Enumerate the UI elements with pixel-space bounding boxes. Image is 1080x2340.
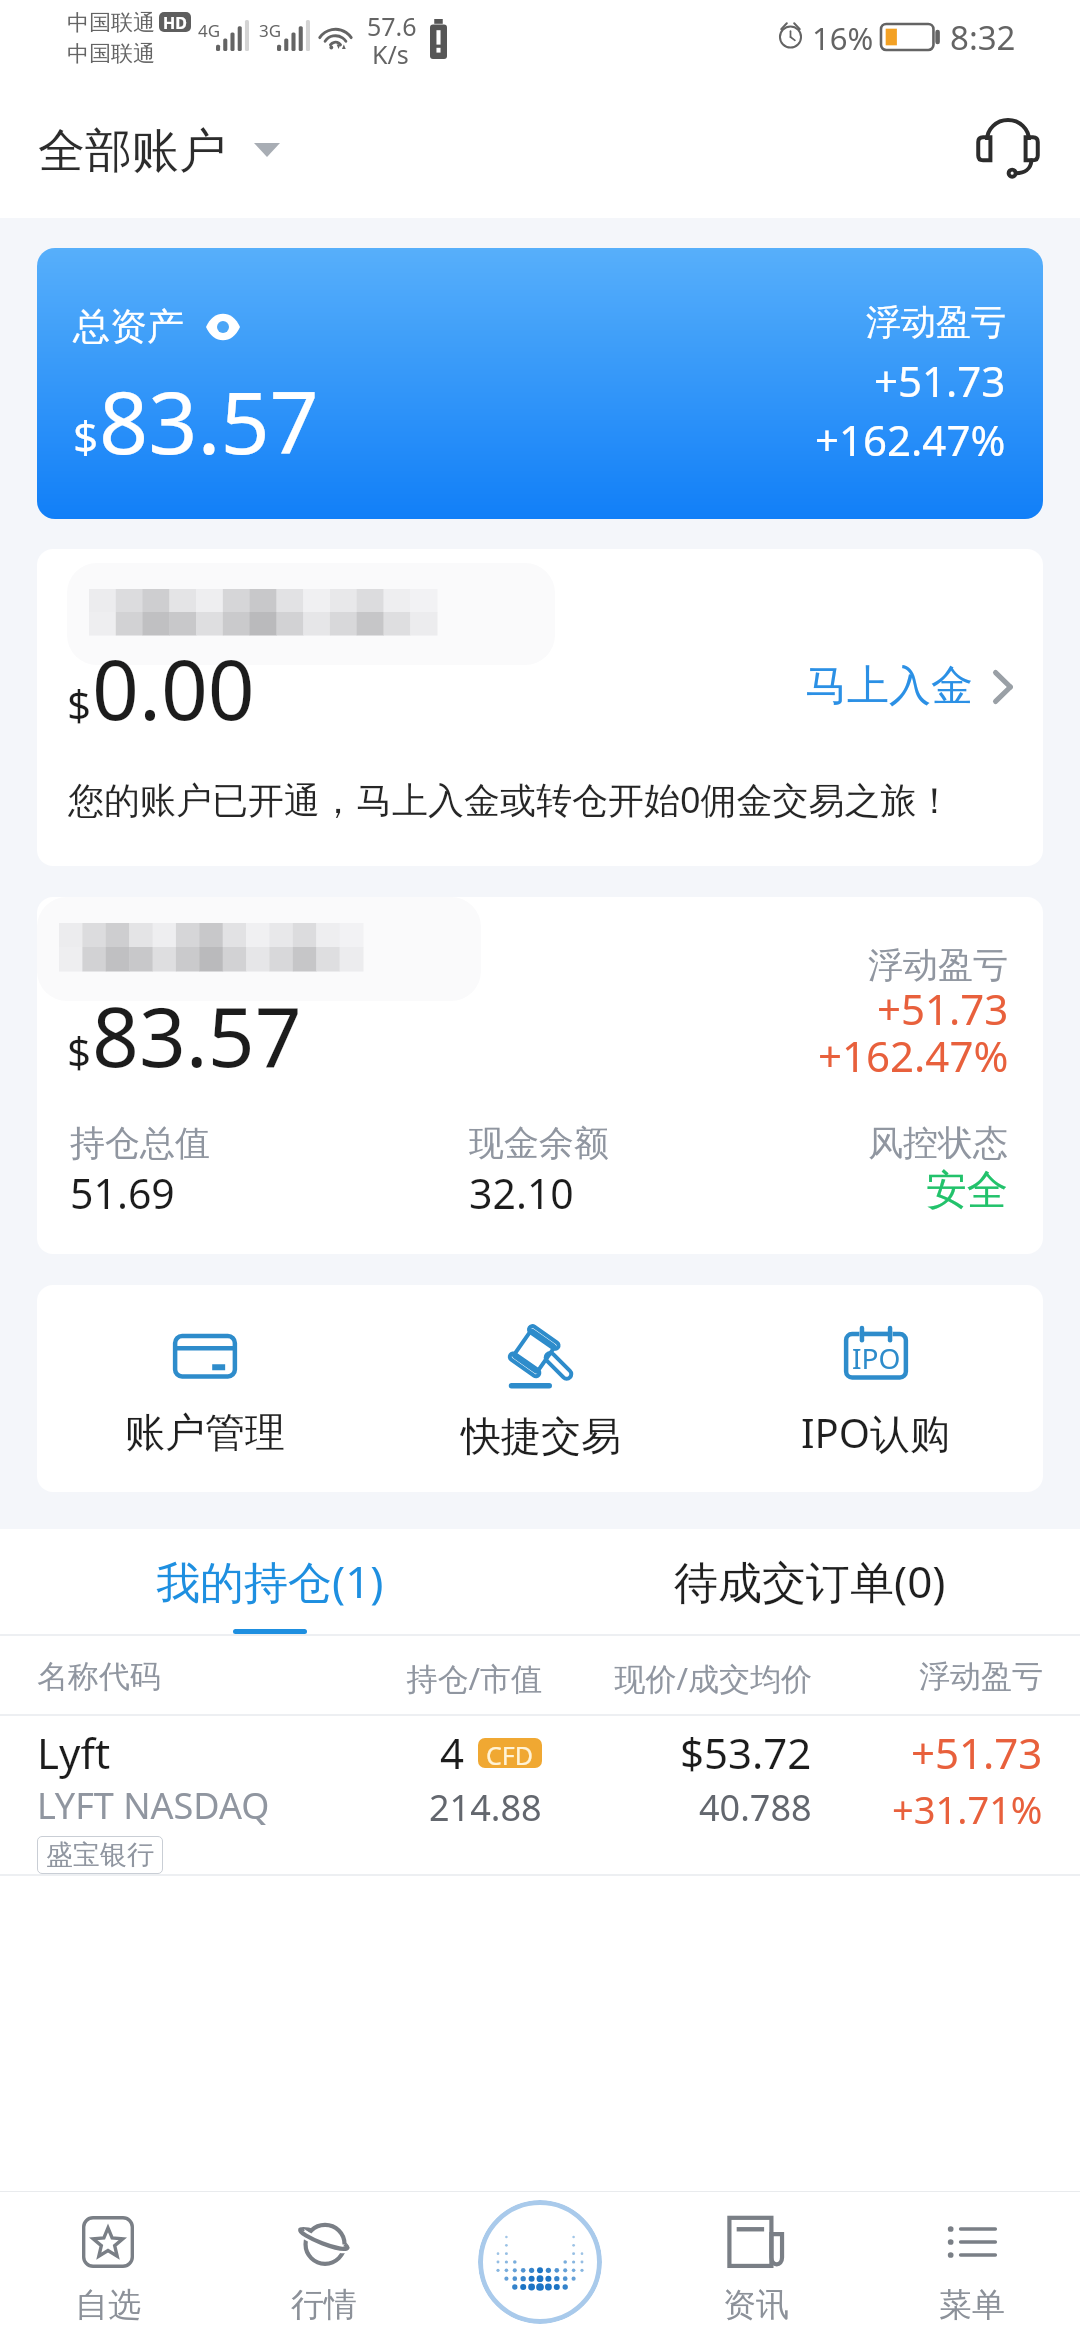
staticText: 总资产 [73, 303, 184, 350]
staticText: 账户 (••••8876) [69, 928, 309, 977]
staticText: LYFT NASDAQ [37, 1781, 270, 1830]
button[interactable]: 马上入金 [805, 660, 1013, 713]
staticText: 中国联通 [67, 40, 155, 68]
button[interactable]: 账户 (••••8876) [37, 897, 1043, 1254]
staticText: 现价/成交均价 [542, 1657, 812, 1699]
staticText: 3G [259, 19, 282, 42]
staticText: 全部账户 [38, 122, 226, 181]
staticText: 账户 (••••7715) [69, 598, 309, 647]
staticText: 马上入金 [805, 660, 973, 713]
button[interactable]: IPO [708, 1285, 1043, 1492]
staticText: 57.6 [367, 9, 417, 43]
staticText: 资讯 [723, 2284, 789, 2326]
staticText: 浮动盈亏 [868, 943, 1008, 987]
button[interactable]: 账户 (••••7715) [37, 549, 1043, 866]
button[interactable]: 资讯 [648, 2216, 864, 2340]
button[interactable]: 待成交订单(0) [540, 1529, 1080, 1634]
button[interactable]: 菜单 [864, 2216, 1080, 2340]
staticText: 4 [440, 1724, 465, 1781]
staticText: K/s [372, 37, 409, 71]
staticText: 8:32 [950, 15, 1016, 60]
staticText: 我的持仓(1) [156, 1551, 384, 1611]
staticText: 51.69 [70, 1165, 175, 1221]
staticText: IPO [852, 1339, 901, 1377]
staticText: 0.00 [92, 632, 255, 744]
staticText: 快捷交易 [461, 1411, 621, 1461]
staticText: 风控状态 [868, 1121, 1008, 1165]
staticText: +51.73 [874, 352, 1006, 409]
staticText: 83.57 [99, 362, 319, 479]
staticText: $ [73, 406, 99, 466]
staticText: HD [163, 12, 187, 32]
staticText: Lyft [37, 1724, 111, 1781]
staticText: 中国联通 [67, 9, 155, 37]
staticText: 您的账户已开通，马上入金或转仓开始0佣金交易之旅！ [68, 775, 953, 824]
button[interactable]: Lyft [0, 1716, 1080, 1874]
staticText: +162.47% [815, 411, 1006, 468]
staticText: 4G [198, 19, 221, 42]
staticText: 持仓总值 [70, 1121, 210, 1165]
staticText: 214.88 [429, 1783, 542, 1832]
staticText: 40.788 [699, 1783, 812, 1832]
staticText: 83.57 [92, 979, 302, 1091]
button[interactable]: 我的持仓(1) [0, 1529, 540, 1634]
staticText: 账户管理 [125, 1407, 285, 1457]
staticText: 菜单 [939, 2284, 1005, 2326]
staticText: 32.10 [469, 1165, 574, 1221]
staticText: 行情 [291, 2284, 357, 2326]
button[interactable]: Customer service [964, 120, 1052, 208]
staticText: 浮动盈亏 [866, 300, 1006, 344]
staticText: 自选 [75, 2284, 141, 2326]
button[interactable]: 自选 [0, 2216, 216, 2340]
button[interactable]: 账户管理 [37, 1285, 373, 1492]
staticText: CFD [486, 1738, 534, 1768]
staticText: 盛宝银行 [46, 1838, 154, 1872]
staticText: 安全 [926, 1165, 1008, 1217]
staticText: +51.73 [877, 980, 1009, 1037]
staticText: $53.72 [680, 1724, 812, 1781]
button[interactable]: 快捷交易 [373, 1285, 708, 1492]
staticText: 16% [812, 17, 874, 59]
staticText: +162.47% [818, 1027, 1009, 1084]
staticText: $ [67, 676, 92, 733]
staticText: $ [67, 1023, 92, 1080]
button[interactable]: Home [478, 2200, 602, 2324]
staticText: IPO认购 [801, 1405, 950, 1460]
button[interactable]: 总资产 [37, 248, 1043, 519]
staticText: 名称代码 [37, 1657, 348, 1696]
staticText: 现金余额 [469, 1121, 609, 1165]
button[interactable]: 全部账户 [22, 114, 296, 189]
staticText: 待成交订单(0) [674, 1551, 946, 1611]
staticText: 持仓/市值 [348, 1657, 542, 1699]
staticText: +31.71% [892, 1783, 1043, 1835]
staticText: 浮动盈亏 [812, 1657, 1043, 1696]
button[interactable]: 行情 [216, 2216, 432, 2340]
staticText: +51.73 [911, 1724, 1043, 1781]
